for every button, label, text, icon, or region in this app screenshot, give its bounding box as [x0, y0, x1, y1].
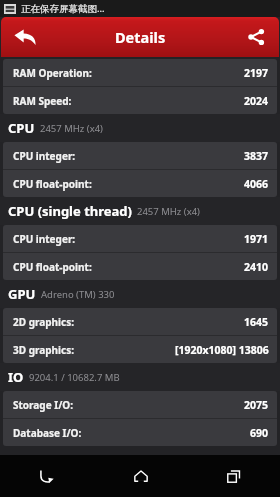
- staticText: 2410: [244, 260, 269, 274]
- staticText: 2457 MHz (x4): [40, 122, 103, 135]
- button[interactable]: Back: [1, 17, 49, 57]
- staticText: RAM Operation:: [13, 66, 92, 80]
- staticText: Adreno (TM) 330: [41, 288, 115, 301]
- button[interactable]: CPU integer:: [3, 142, 277, 169]
- staticText: 1645: [244, 315, 269, 329]
- staticText: Storage I/O:: [13, 398, 74, 412]
- staticText: CPU float-point:: [13, 177, 92, 191]
- staticText: 690: [250, 426, 269, 440]
- staticText: 2D graphics:: [13, 315, 75, 329]
- button[interactable]: 3D graphics:: [3, 336, 277, 363]
- staticText: 2197: [244, 66, 269, 80]
- staticText: 1971: [244, 232, 269, 246]
- staticText: CPU float-point:: [13, 260, 92, 274]
- staticText: [1920x1080] 13806: [175, 343, 269, 357]
- staticText: CPU integer:: [13, 232, 76, 246]
- button[interactable]: CPU integer:: [3, 225, 277, 252]
- staticText: Details: [115, 27, 166, 47]
- staticText: CPU integer:: [13, 149, 76, 163]
- button[interactable]: Storage I/O:: [3, 391, 277, 418]
- button[interactable]: Database I/O:: [3, 419, 277, 446]
- staticText: GPU: [8, 285, 36, 303]
- staticText: Database I/O:: [13, 426, 82, 440]
- button[interactable]: Home: [94, 455, 187, 497]
- staticText: RAM Speed:: [13, 94, 72, 108]
- button[interactable]: 2D graphics:: [3, 308, 277, 335]
- button[interactable]: Recent apps: [187, 455, 280, 497]
- button[interactable]: Back: [0, 455, 94, 497]
- staticText: 正在保存屏幕截图...: [21, 2, 105, 15]
- button[interactable]: Share: [233, 17, 279, 57]
- staticText: 9204.1 / 10682.7 MB: [29, 371, 120, 384]
- staticText: 2457 MHz (x4): [137, 205, 200, 218]
- staticText: CPU (single thread): [8, 202, 132, 220]
- staticText: IO: [8, 368, 24, 386]
- button[interactable]: CPU float-point:: [3, 170, 277, 197]
- staticText: 3D graphics:: [13, 343, 75, 357]
- button[interactable]: RAM Operation:: [3, 59, 277, 86]
- staticText: 4066: [244, 177, 269, 191]
- staticText: CPU: [8, 119, 35, 137]
- staticText: 2075: [244, 398, 269, 412]
- button[interactable]: CPU float-point:: [3, 253, 277, 280]
- staticText: 3837: [244, 149, 269, 163]
- button[interactable]: RAM Speed:: [3, 87, 277, 114]
- staticText: 2024: [244, 94, 269, 108]
